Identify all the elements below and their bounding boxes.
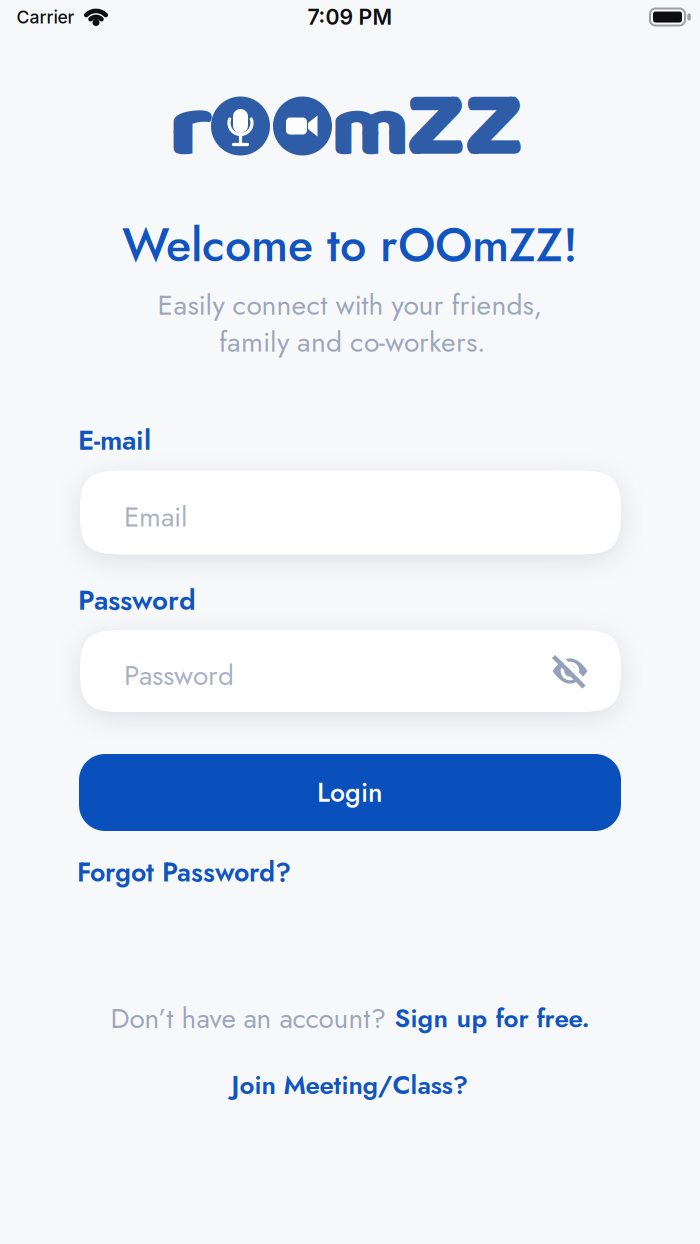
staticText: r	[173, 62, 208, 198]
staticText: Don’t have an account?	[110, 998, 386, 1038]
staticText: E-mail	[78, 420, 151, 460]
staticText: Welcome to rOOmZZ!	[122, 211, 578, 279]
staticText: Forgot Password?	[77, 853, 291, 891]
button[interactable]: Login	[79, 754, 621, 831]
staticText: Sign up for free.	[394, 999, 589, 1037]
staticText: family and co-workers.	[219, 322, 485, 362]
staticText: Email	[124, 496, 187, 537]
staticText: Password	[78, 580, 196, 620]
button[interactable]: Join Meeting/Class?	[231, 1066, 468, 1104]
staticText: Easily connect with your friends,	[157, 285, 542, 325]
staticText: Z	[467, 53, 519, 203]
button[interactable]: Show password	[548, 649, 592, 693]
staticText: Join Meeting/Class?	[231, 1066, 468, 1104]
staticText: Carrier	[16, 6, 74, 28]
button[interactable]: Password	[80, 630, 621, 712]
staticText: m	[334, 62, 406, 198]
button[interactable]: Email	[80, 470, 621, 554]
staticText: 7:09 PM	[307, 4, 392, 30]
staticText: Password	[124, 655, 234, 695]
button[interactable]: Sign up for free.	[394, 999, 589, 1037]
button[interactable]: Forgot Password?	[77, 853, 291, 891]
staticText: Z	[409, 53, 461, 203]
staticText: Login	[317, 773, 383, 812]
